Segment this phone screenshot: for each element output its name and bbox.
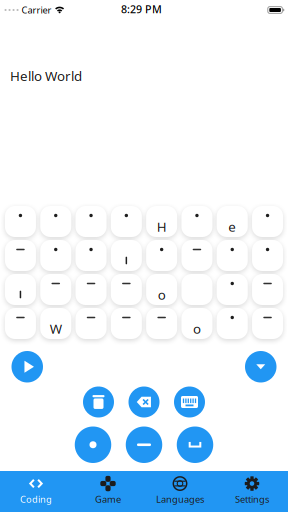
button[interactable]: dot [75,240,106,271]
button[interactable]: dot [5,206,36,237]
button[interactable]: dash [252,274,283,305]
staticText: o [193,320,201,337]
staticText: Languages [156,493,204,505]
button[interactable]: dash [75,308,106,339]
button[interactable]: dot [40,240,71,271]
button[interactable]: dash [40,274,71,305]
button[interactable]: H [146,206,177,237]
button[interactable]: Hide keyboard [245,351,276,382]
staticText: 8:29 PM [121,2,162,16]
button[interactable]: Settings [216,471,288,512]
button[interactable]: o [146,274,177,305]
staticText: Carrier [22,4,52,16]
button[interactable]: dot [146,240,177,271]
button[interactable]: Space [177,426,213,463]
staticText: W [50,320,62,337]
button[interactable]: dash [5,308,36,339]
button[interactable]: dash [75,274,106,305]
staticText: Game [95,493,121,505]
staticText: e [228,218,236,235]
staticText: Settings [235,493,269,505]
button[interactable]: Languages [144,471,216,512]
button[interactable]: Keyboard [174,386,205,417]
staticText: o [158,286,166,303]
button[interactable]: Play [11,351,43,382]
button[interactable]: Coding [0,471,72,512]
button[interactable]: dot [75,206,106,237]
staticText: Coding [20,493,52,505]
button[interactable]: Dash [126,426,162,463]
button[interactable]: dash [111,274,142,305]
button[interactable]: Dot [75,426,111,463]
button[interactable]: space [181,274,212,305]
button[interactable]: o [181,308,212,339]
button[interactable]: e [217,206,248,237]
button[interactable]: dash [252,308,283,339]
button[interactable]: dash [146,308,177,339]
button[interactable]: dot [217,308,248,339]
button[interactable]: dash [181,240,212,271]
button[interactable]: dash [5,240,36,271]
button[interactable]: l [111,240,142,271]
button[interactable]: dot [217,274,248,305]
button[interactable]: dot [111,206,142,237]
button[interactable]: Clear [83,386,114,417]
button[interactable]: W [40,308,71,339]
button[interactable]: dash [111,308,142,339]
button[interactable]: dot [252,240,283,271]
button[interactable]: Game [72,471,144,512]
staticText: H [157,218,167,235]
button[interactable]: dot [252,206,283,237]
button[interactable]: Delete [128,386,159,417]
button[interactable]: l [5,274,36,305]
staticText: Hello World [10,67,82,85]
button[interactable]: dot [217,240,248,271]
button[interactable]: dot [40,206,71,237]
button[interactable]: dot [181,206,212,237]
